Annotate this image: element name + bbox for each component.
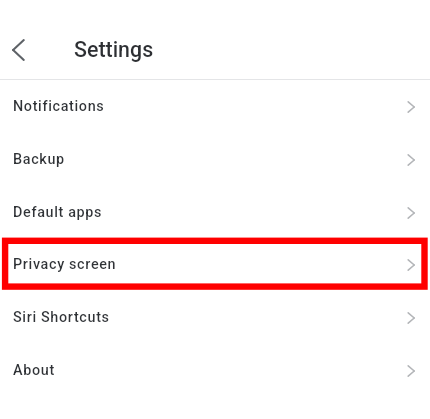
staticText: Notifications: [13, 98, 105, 115]
button[interactable]: Notifications: [0, 80, 430, 133]
staticText: Settings: [74, 37, 154, 62]
button[interactable]: Siri Shortcuts: [0, 291, 430, 344]
staticText: Siri Shortcuts: [13, 309, 110, 326]
button[interactable]: Back: [0, 31, 38, 69]
staticText: Default apps: [13, 204, 103, 221]
staticText: Privacy screen: [13, 256, 117, 273]
button[interactable]: About: [0, 344, 430, 397]
staticText: About: [13, 362, 55, 379]
button[interactable]: Default apps: [0, 186, 430, 239]
button[interactable]: Privacy screen: [0, 238, 430, 291]
button[interactable]: Backup: [0, 133, 430, 186]
staticText: Backup: [13, 151, 65, 168]
